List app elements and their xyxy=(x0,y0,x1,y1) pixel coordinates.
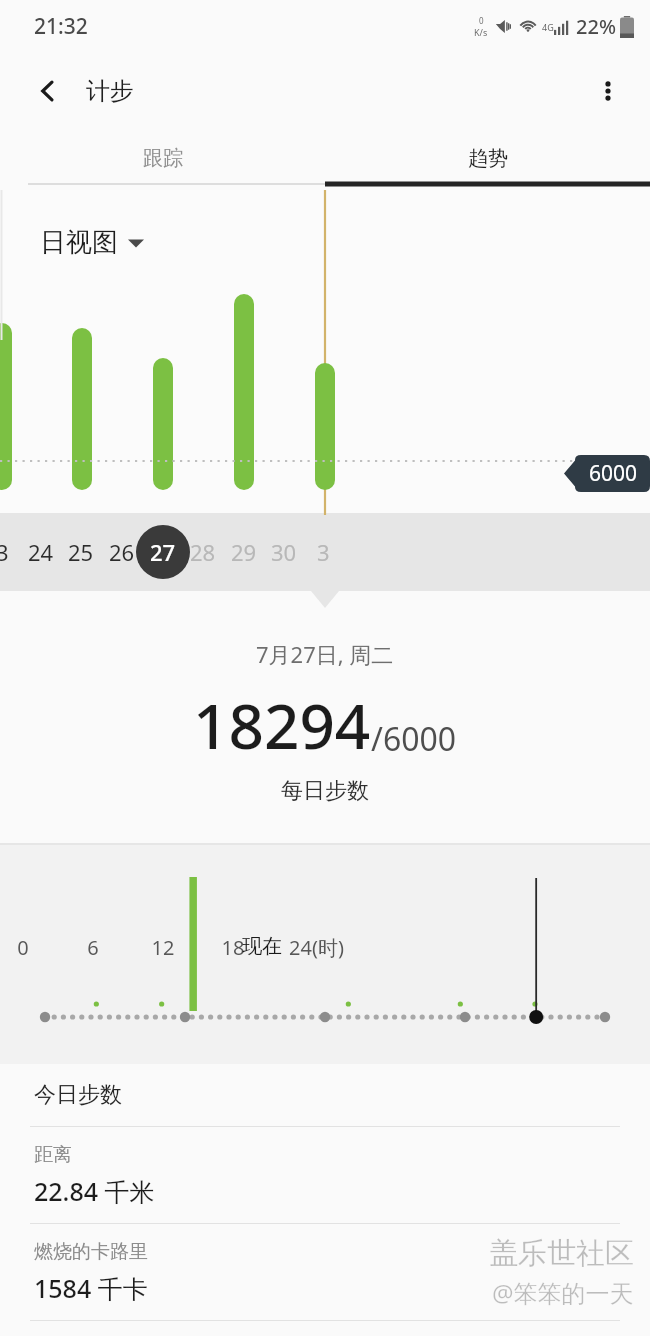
staticText: 28 xyxy=(190,537,216,567)
button[interactable]: More options xyxy=(584,67,632,115)
button[interactable]: 26 xyxy=(95,525,149,579)
staticText: 7月27日, 周二 xyxy=(256,639,394,669)
staticText: 盖乐世社区 xyxy=(489,1235,634,1272)
staticText: 24(时) xyxy=(289,934,344,961)
staticText: @笨笨的一天 xyxy=(492,1276,634,1309)
button[interactable]: 29 xyxy=(217,525,271,579)
staticText: 距离 xyxy=(34,1143,72,1167)
staticText: K/s xyxy=(474,26,488,38)
staticText: 计步 xyxy=(86,76,134,106)
button[interactable]: 今日步数 xyxy=(0,1064,650,1126)
button[interactable]: 3 xyxy=(296,525,350,579)
staticText: 3 xyxy=(317,537,330,567)
button[interactable]: 趋势 xyxy=(325,130,650,186)
button[interactable]: 燃烧的卡路里 xyxy=(0,1224,650,1320)
staticText: 24 xyxy=(28,537,54,567)
staticText: 22% xyxy=(576,13,616,40)
button[interactable]: 28 xyxy=(176,525,230,579)
staticText: 1584 千卡 xyxy=(34,1271,148,1305)
staticText: 6000 xyxy=(589,459,638,488)
button[interactable]: 25 xyxy=(54,525,108,579)
button[interactable]: 30 xyxy=(257,525,311,579)
staticText: /6000 xyxy=(371,717,457,761)
staticText: 现在 xyxy=(242,934,282,959)
staticText: 25 xyxy=(68,537,94,567)
staticText: 每日步数 xyxy=(281,777,369,805)
button[interactable]: 跟踪 xyxy=(0,130,325,186)
button[interactable]: Back xyxy=(24,67,72,115)
staticText: 4G xyxy=(542,21,554,33)
staticText: 燃烧的卡路里 xyxy=(34,1240,148,1264)
staticText: 18 xyxy=(219,934,247,961)
button[interactable]: 24 xyxy=(14,525,68,579)
button[interactable]: 3 xyxy=(0,525,29,579)
staticText: 6 xyxy=(79,934,107,961)
staticText: 0 xyxy=(479,15,484,26)
staticText: 跟踪 xyxy=(143,146,183,171)
staticText: 日视图 xyxy=(40,226,118,259)
button[interactable]: 距离 xyxy=(0,1127,650,1223)
staticText: 18294 xyxy=(193,683,371,767)
staticText: 今日步数 xyxy=(34,1081,122,1109)
button[interactable]: 27 xyxy=(136,525,190,579)
staticText: 22.84 千米 xyxy=(34,1174,155,1208)
staticText: 30 xyxy=(271,537,297,567)
staticText: 12 xyxy=(149,934,177,961)
staticText: 27 xyxy=(150,537,176,567)
staticText: 0 xyxy=(9,934,37,961)
staticText: 26 xyxy=(109,537,135,567)
staticText: 3 xyxy=(0,537,9,567)
button[interactable]: 日视图 xyxy=(40,226,144,259)
staticText: 21:32 xyxy=(34,12,88,41)
staticText: 趋势 xyxy=(468,146,508,171)
staticText: 29 xyxy=(231,537,257,567)
